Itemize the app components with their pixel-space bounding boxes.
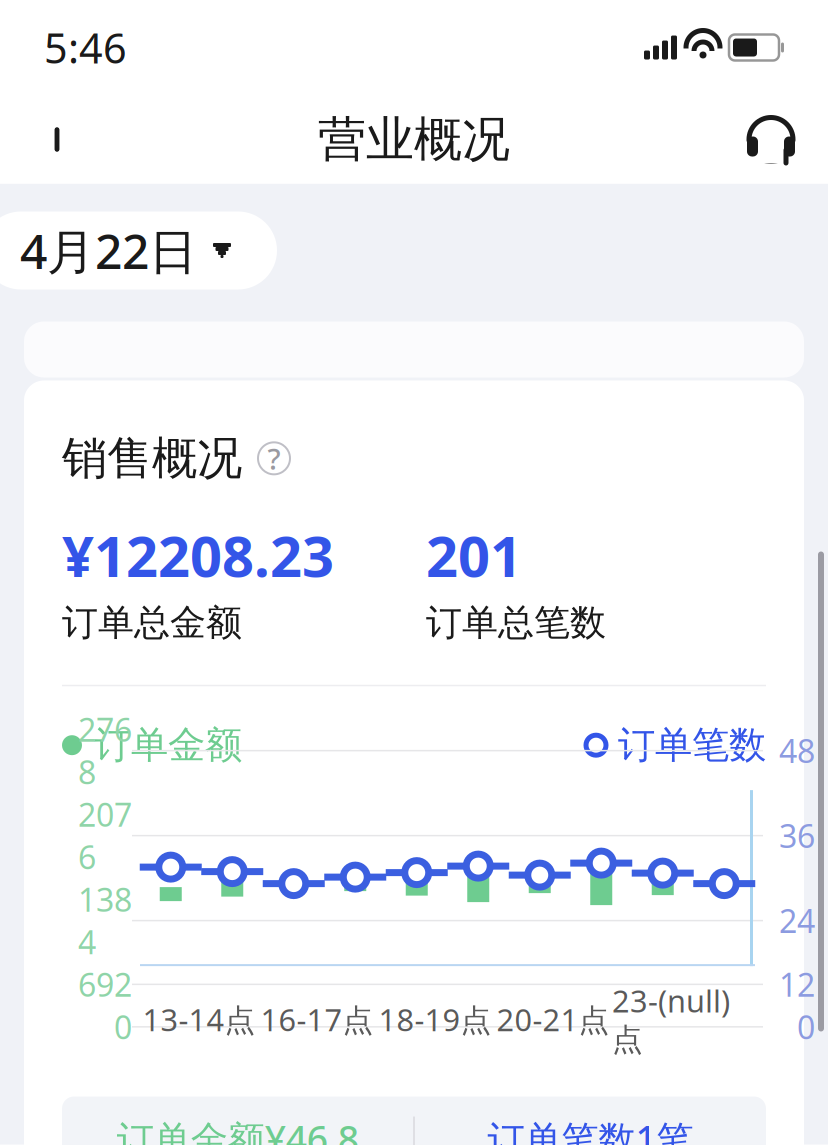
staticText: 12 [779,963,815,1006]
staticText: 13-14点 [142,999,255,1040]
button[interactable]: Help [258,442,290,474]
button[interactable]: Back [22,104,92,174]
staticText: 订单金额 [94,722,242,768]
staticText: 18-19点 [378,999,491,1040]
staticText: ¥12208.23 [62,518,334,593]
staticText: 5:46 [44,20,127,75]
staticText: 23-(null)点 [612,980,730,1058]
staticText: 692 [78,963,132,1006]
staticText: 订单总笔数 [426,600,606,645]
staticText: 0 [114,1006,132,1048]
button[interactable]: 4月22日 [0,211,277,289]
staticText: 16-17点 [260,999,373,1040]
staticText: 48 [779,729,815,772]
staticText: 订单笔数1笔 [487,1114,693,1145]
staticText: 0 [797,1006,815,1048]
button[interactable]: Customer service [736,104,806,174]
staticText: ? [267,439,280,478]
staticText: 2768 [78,708,132,793]
staticText: 24 [779,899,815,942]
staticText: 订单笔数 [618,722,766,768]
staticText: 2076 [78,793,132,878]
staticText: 36 [779,814,815,857]
staticText: 4月22日 [20,219,197,282]
staticText: 订单总金额 [62,600,242,645]
staticText: 20-21点 [496,999,609,1040]
staticText: 营业概况 [318,110,510,169]
staticText: 1384 [78,878,132,963]
staticText: 订单金额¥46.8 [117,1114,359,1145]
staticText: 销售概况 [62,430,242,486]
staticText: 201 [426,518,522,593]
